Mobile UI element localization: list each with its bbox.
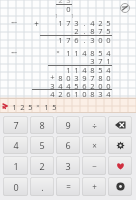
button[interactable]: Settings bbox=[108, 136, 132, 154]
staticText: 2 bbox=[90, 81, 95, 89]
staticText: 4 bbox=[106, 89, 111, 97]
staticText: 5 bbox=[39, 139, 45, 151]
button[interactable]: Backspace bbox=[108, 116, 132, 134]
staticText: 7 bbox=[66, 35, 71, 43]
staticText: 8 bbox=[90, 65, 95, 73]
staticText: 1 bbox=[66, 65, 71, 73]
staticText: 0 bbox=[66, 73, 71, 81]
staticText: 9 bbox=[65, 119, 71, 131]
staticText: + bbox=[34, 18, 39, 26]
staticText: ÷ bbox=[92, 120, 97, 131]
button[interactable]: Favorite bbox=[108, 156, 132, 175]
button[interactable]: ÷ bbox=[82, 116, 106, 134]
staticText: 9 bbox=[82, 73, 87, 81]
staticText: 0 bbox=[106, 73, 111, 81]
staticText: ••• bbox=[11, 50, 17, 57]
staticText: 7 bbox=[98, 56, 103, 64]
staticText: 4 bbox=[82, 65, 87, 73]
staticText: 2 bbox=[74, 26, 79, 34]
staticText: 2 bbox=[98, 18, 103, 26]
staticText: 4 bbox=[66, 81, 71, 89]
staticText: , bbox=[83, 35, 86, 43]
staticText: 8 bbox=[90, 89, 95, 97]
button[interactable]: Expand addition step bbox=[9, 19, 19, 27]
staticText: 0 bbox=[98, 81, 103, 89]
staticText: 1 bbox=[66, 48, 71, 56]
staticText: 4 bbox=[106, 65, 111, 73]
staticText: 8 bbox=[98, 73, 103, 81]
staticText: 3 bbox=[66, 0, 71, 4]
staticText: 2 bbox=[20, 102, 25, 110]
button[interactable]: 5 bbox=[30, 136, 54, 154]
button[interactable]: 3 bbox=[56, 156, 80, 175]
button[interactable]: 6 bbox=[56, 136, 80, 154]
button[interactable]: × bbox=[82, 136, 106, 154]
staticText: 3 bbox=[50, 81, 55, 89]
staticText: 5 bbox=[106, 18, 111, 26]
staticText: . bbox=[41, 181, 44, 193]
staticText: 2 bbox=[58, 0, 63, 4]
staticText: , bbox=[83, 26, 86, 34]
staticText: 8 bbox=[39, 119, 45, 131]
staticText: + bbox=[50, 72, 55, 80]
staticText: 1 bbox=[74, 65, 79, 73]
staticText: 8 bbox=[58, 73, 63, 81]
button[interactable]: 4 bbox=[3, 136, 28, 154]
staticText: = bbox=[66, 181, 71, 192]
staticText: 4 bbox=[90, 18, 95, 26]
staticText: 1 bbox=[13, 160, 19, 172]
button[interactable]: 7 bbox=[3, 116, 28, 134]
button[interactable]: 0 bbox=[3, 177, 28, 196]
staticText: 3 bbox=[98, 89, 103, 97]
staticText: 1 bbox=[74, 48, 79, 56]
staticText: 1 bbox=[106, 56, 111, 64]
staticText: − bbox=[92, 160, 97, 171]
staticText: 4 bbox=[82, 48, 87, 56]
staticText: 4 bbox=[13, 139, 19, 151]
button[interactable]: Menu bbox=[119, 2, 131, 14]
staticText: ••• bbox=[11, 20, 17, 27]
staticText: 4 bbox=[50, 89, 55, 97]
staticText: 1 bbox=[71, 13, 74, 19]
staticText: 7 bbox=[90, 73, 95, 81]
staticText: 3 bbox=[74, 18, 79, 26]
button[interactable]: Power bbox=[108, 177, 132, 196]
button[interactable]: = bbox=[56, 177, 80, 196]
staticText: + bbox=[92, 181, 97, 192]
staticText: × bbox=[36, 102, 40, 110]
staticText: 7 bbox=[13, 119, 19, 131]
staticText: 8 bbox=[90, 26, 95, 34]
staticText: 1 bbox=[55, 13, 58, 19]
staticText: 7 bbox=[98, 26, 103, 34]
button[interactable]: − bbox=[82, 156, 106, 175]
staticText: 6 bbox=[66, 89, 71, 97]
staticText: 1 bbox=[58, 35, 63, 43]
button[interactable]: 8 bbox=[30, 116, 54, 134]
staticText: 5 bbox=[106, 26, 111, 34]
staticText: 1 bbox=[74, 89, 79, 97]
staticText: 6 bbox=[65, 139, 71, 151]
staticText: 5 bbox=[98, 65, 103, 73]
button[interactable]: 1 bbox=[0, 98, 136, 113]
staticText: 3 bbox=[90, 35, 95, 43]
button[interactable]: + bbox=[82, 177, 106, 196]
staticText: 4 bbox=[106, 48, 111, 56]
staticText: 5 bbox=[98, 48, 103, 56]
button[interactable]: 2 bbox=[30, 156, 54, 175]
staticText: 1 bbox=[12, 102, 17, 110]
staticText: , bbox=[83, 18, 86, 26]
staticText: 0 bbox=[13, 181, 19, 193]
staticText: 8 bbox=[90, 48, 95, 56]
staticText: 0 bbox=[98, 35, 103, 43]
staticText: 1 bbox=[58, 18, 63, 26]
staticText: 3 bbox=[90, 56, 95, 64]
button[interactable]: 1 bbox=[3, 156, 28, 175]
button[interactable]: Expand multiplication step bbox=[9, 49, 19, 57]
staticText: 6 bbox=[74, 35, 79, 43]
staticText: 6 bbox=[82, 81, 87, 89]
button[interactable]: 9 bbox=[56, 116, 80, 134]
staticText: 5 bbox=[74, 81, 79, 89]
staticText: 2 bbox=[39, 160, 45, 172]
button[interactable]: . bbox=[30, 177, 54, 196]
staticText: 7 bbox=[66, 18, 71, 26]
